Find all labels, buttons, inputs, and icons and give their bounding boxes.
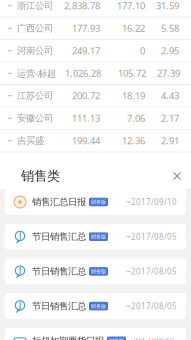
staticText: 1,026.28 [65, 67, 101, 79]
button[interactable]: 节日销售汇总 [5, 293, 186, 319]
staticText: 财务版 [91, 233, 106, 240]
staticText: 江苏公司 [17, 90, 53, 101]
staticText: 18.19 [122, 90, 145, 102]
staticText: 财务版 [91, 268, 106, 275]
button[interactable]: Close [164, 163, 190, 189]
staticText: 河南公司 [17, 45, 53, 56]
button[interactable]: 标超如期票货日报 [5, 328, 186, 340]
staticText: 财务版 [109, 337, 124, 340]
staticText: ~2017/08/05 [126, 231, 177, 242]
button[interactable]: 节日销售汇总 [5, 258, 186, 284]
staticText: 安徽公司 [17, 112, 53, 124]
staticText: 财务版 [91, 303, 106, 309]
staticText: 7.06 [127, 112, 145, 124]
staticText: 177.10 [117, 0, 145, 12]
staticText: 199.44 [72, 135, 100, 147]
staticText: 2.91 [161, 135, 179, 147]
staticText: 广西公司 [17, 22, 53, 34]
staticText: ~2017/08/05 [126, 301, 177, 311]
staticText: 节日销售汇总 [32, 300, 86, 312]
staticText: 标超如期票货日报 [32, 335, 104, 340]
staticText: 2.95 [161, 45, 179, 57]
staticText: 节日销售汇总 [32, 231, 86, 242]
staticText: 销售汇总日报 [32, 196, 86, 208]
staticText: 16.22 [122, 22, 145, 34]
staticText: 31.59 [156, 0, 179, 12]
staticText: ~2017/08/05 [126, 266, 177, 277]
staticText: ~2017/08/05 [126, 335, 177, 340]
staticText: 249.17 [72, 45, 100, 57]
button[interactable]: 节日销售汇总 [5, 224, 186, 250]
staticText: 财务版 [91, 199, 106, 205]
staticText: 2,838.78 [64, 0, 100, 12]
staticText: 销售类 [21, 168, 60, 184]
staticText: 浙江公司 [17, 0, 53, 11]
staticText: 2.17 [161, 112, 179, 124]
staticText: 177.93 [72, 22, 100, 34]
staticText: 5.58 [161, 22, 179, 34]
staticText: ~2017/09/10 [126, 197, 177, 207]
staticText: 105.72 [118, 67, 146, 79]
staticText: 27.39 [157, 67, 180, 79]
staticText: 200.72 [72, 90, 100, 102]
staticText: 节日销售汇总 [32, 266, 86, 277]
staticText: 吉买盛 [17, 135, 44, 146]
staticText: 4.43 [161, 90, 179, 102]
staticText: 0 [140, 45, 145, 57]
button[interactable]: 销售汇总日报 [5, 189, 186, 215]
staticText: 111.13 [72, 112, 100, 124]
staticText: 运营-标超 [17, 67, 56, 79]
staticText: 12.36 [122, 135, 145, 147]
